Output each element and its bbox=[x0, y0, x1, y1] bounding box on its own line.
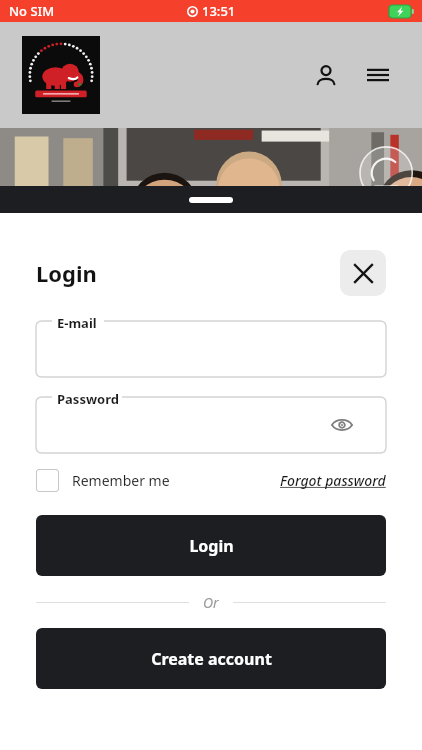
button[interactable]: Remember me bbox=[36, 469, 170, 492]
button[interactable] bbox=[36, 397, 386, 453]
button[interactable]: Show password bbox=[328, 411, 356, 439]
button[interactable]: Account bbox=[308, 57, 344, 93]
staticText: Password bbox=[57, 390, 119, 408]
staticText: Create account bbox=[151, 648, 272, 670]
staticText: Login bbox=[189, 535, 234, 557]
staticText: Remember me bbox=[72, 471, 170, 490]
button[interactable]: Forgot password bbox=[280, 471, 386, 490]
button[interactable]: Menu bbox=[360, 57, 396, 93]
button[interactable]: Close bbox=[340, 250, 386, 296]
button[interactable]: The Red Elephant home bbox=[22, 36, 100, 114]
staticText: Login bbox=[36, 258, 97, 288]
staticText: E-mail bbox=[57, 314, 97, 332]
button[interactable] bbox=[36, 321, 386, 377]
button[interactable]: Create account bbox=[36, 628, 386, 689]
staticText: Forgot password bbox=[280, 471, 386, 490]
button[interactable]: Login bbox=[36, 515, 386, 576]
staticText: 13:51 bbox=[202, 2, 236, 20]
staticText: Or bbox=[203, 593, 219, 612]
staticText: No SIM bbox=[9, 2, 55, 20]
